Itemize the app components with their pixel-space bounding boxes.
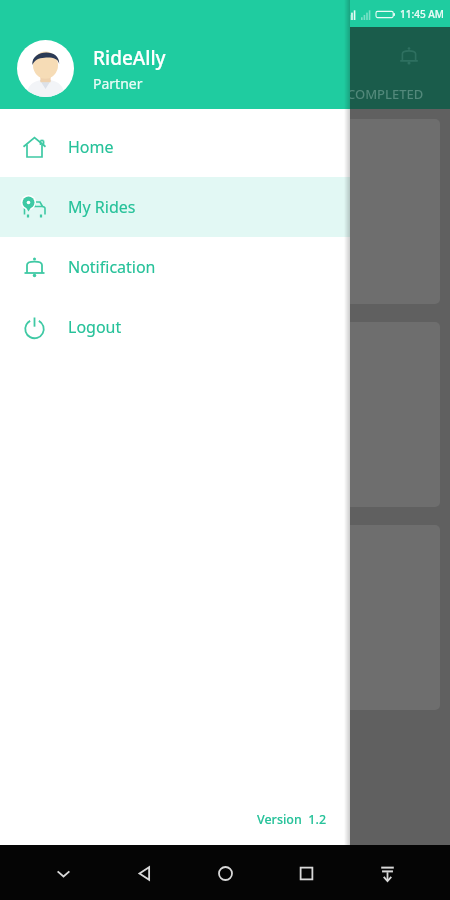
button[interactable]: Logout bbox=[0, 297, 350, 357]
staticText: My Rides bbox=[68, 196, 136, 218]
staticText: Version 1.2 bbox=[257, 811, 327, 828]
staticText: Home bbox=[68, 136, 114, 158]
staticText: Notification bbox=[68, 256, 156, 278]
button[interactable]: Recents bbox=[280, 847, 332, 899]
staticText: 11:45 AM bbox=[400, 7, 444, 21]
button[interactable]: Notifications bbox=[386, 33, 432, 79]
staticText: RideAlly bbox=[93, 45, 166, 71]
button[interactable]: Bangalore Bus Stope - airp... bbox=[10, 119, 440, 304]
button[interactable]: Home bbox=[0, 117, 350, 177]
staticText: Bangalore Bus Stope - airp... bbox=[26, 159, 232, 179]
button[interactable]: Bangalore Bus Stope - airp... bbox=[10, 525, 440, 710]
button[interactable]: Bangalore Bus Stope - airp... bbox=[10, 322, 440, 507]
staticText: Logout bbox=[68, 316, 122, 338]
button[interactable]: Hide navigation bar bbox=[361, 847, 413, 899]
button[interactable]: Home bbox=[199, 847, 251, 899]
staticText: Kempegowda Airport (BLR... bbox=[26, 228, 211, 247]
staticText: Partner bbox=[93, 74, 143, 93]
button[interactable]: Profile photo bbox=[17, 40, 74, 97]
button[interactable]: Back bbox=[118, 847, 170, 899]
button[interactable]: Notification bbox=[0, 237, 350, 297]
staticText: ₹ 450 (Cash) bbox=[26, 263, 107, 282]
staticText: COMPLETED bbox=[347, 85, 424, 103]
button[interactable]: Hide keyboard bbox=[37, 847, 89, 899]
staticText: Richmond Circle Underp... bbox=[26, 195, 198, 214]
button[interactable]: My Rides bbox=[0, 177, 350, 237]
